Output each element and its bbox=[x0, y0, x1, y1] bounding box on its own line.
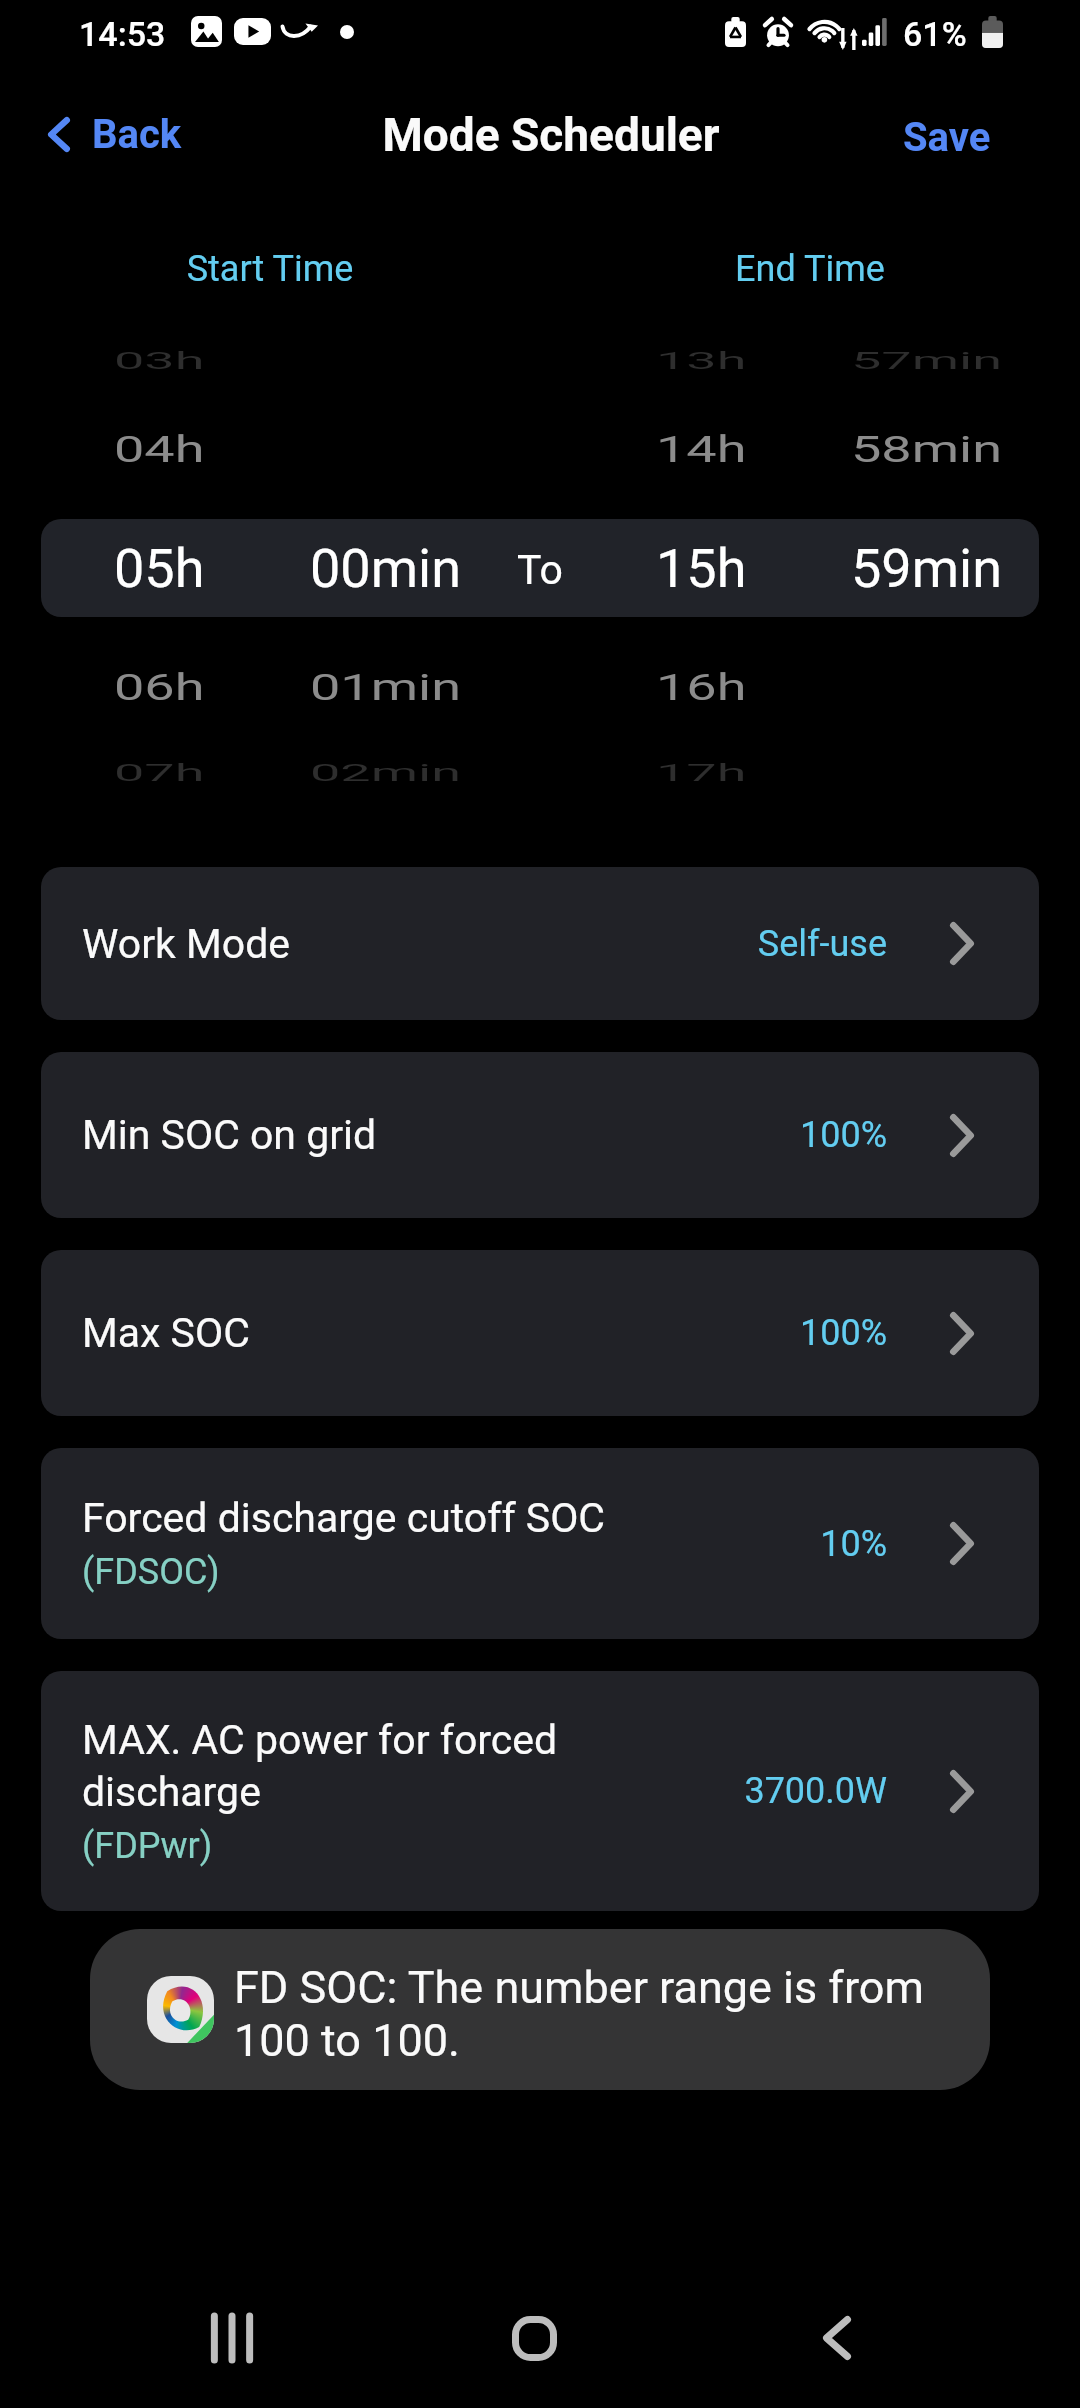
staticText: 06h bbox=[114, 666, 264, 709]
staticText: 00min bbox=[310, 537, 540, 600]
staticText: Max SOC bbox=[82, 1309, 250, 1357]
staticText: 58min bbox=[851, 428, 1080, 471]
staticText: Min SOC on grid bbox=[82, 1111, 377, 1159]
staticText: 59min bbox=[851, 537, 1080, 600]
button[interactable]: Recent apps bbox=[192, 2298, 272, 2378]
button[interactable]: Selected time range bbox=[41, 519, 1039, 617]
staticText: (FDSOC) bbox=[82, 1551, 220, 1593]
staticText: Work Mode bbox=[82, 920, 291, 968]
staticText: 05h bbox=[114, 537, 264, 600]
staticText: (FDPwr) bbox=[82, 1825, 213, 1867]
staticText: 03h bbox=[114, 347, 264, 374]
staticText: 15h bbox=[656, 537, 806, 600]
button[interactable]: Back bbox=[36, 101, 194, 168]
staticText: 61% bbox=[903, 14, 967, 54]
staticText: Self-use bbox=[584, 923, 887, 965]
staticText: 04h bbox=[114, 428, 264, 471]
staticText: Back bbox=[92, 111, 182, 158]
button[interactable]: MAX. AC power for forced discharge bbox=[41, 1671, 1039, 1911]
staticText: 16h bbox=[656, 666, 806, 709]
staticText: 14:53 bbox=[79, 14, 166, 54]
staticText: FD SOC: The number range is from bbox=[234, 1961, 924, 2014]
staticText: 02min bbox=[310, 759, 540, 786]
button[interactable]: Work Mode bbox=[41, 867, 1039, 1020]
button[interactable]: Home bbox=[494, 2298, 574, 2378]
staticText: 13h bbox=[656, 347, 806, 374]
staticText: 57min bbox=[851, 347, 1080, 374]
staticText: 100% bbox=[584, 1114, 887, 1156]
button[interactable]: Back bbox=[797, 2298, 877, 2378]
staticText: 07h bbox=[114, 759, 264, 786]
staticText: 01min bbox=[310, 666, 540, 709]
staticText: Mode Scheduler bbox=[11, 108, 1080, 162]
staticText: 10% bbox=[584, 1523, 887, 1565]
staticText: Forced discharge cutoff SOC bbox=[82, 1494, 606, 1542]
button[interactable]: Max SOC bbox=[41, 1250, 1039, 1416]
button[interactable]: Forced discharge cutoff SOC bbox=[41, 1448, 1039, 1639]
staticText: 3700.0W bbox=[584, 1770, 887, 1812]
staticText: 14h bbox=[656, 428, 806, 471]
button[interactable]: Save bbox=[881, 106, 1013, 169]
staticText: To bbox=[517, 546, 563, 594]
staticText: 100% bbox=[584, 1312, 887, 1354]
staticText: End Time bbox=[690, 248, 930, 290]
staticText: MAX. AC power for forced discharge bbox=[82, 1716, 612, 1816]
staticText: 100 to 100. bbox=[234, 2014, 460, 2067]
staticText: Start Time bbox=[150, 248, 390, 290]
staticText: 17h bbox=[656, 759, 806, 786]
button[interactable]: Min SOC on grid bbox=[41, 1052, 1039, 1218]
